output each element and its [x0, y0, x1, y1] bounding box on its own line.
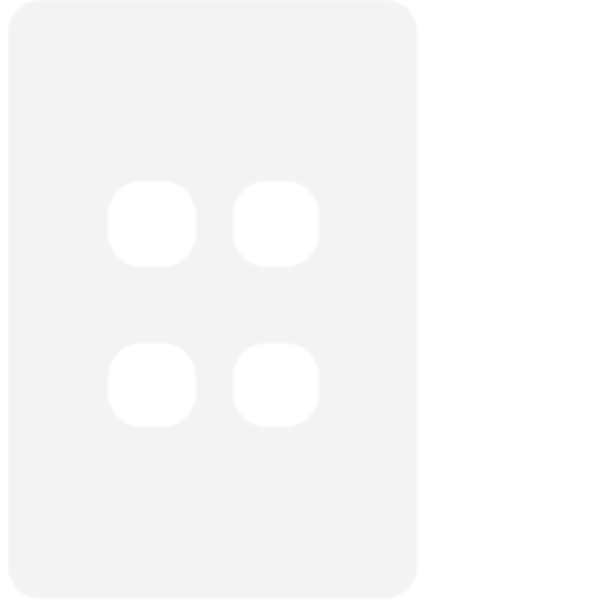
button[interactable]: Shortcut two	[233, 181, 319, 267]
button[interactable]: Shortcut four	[233, 343, 319, 427]
button[interactable]: Shortcut three	[108, 343, 196, 427]
button[interactable]: Shortcut one	[108, 181, 196, 267]
